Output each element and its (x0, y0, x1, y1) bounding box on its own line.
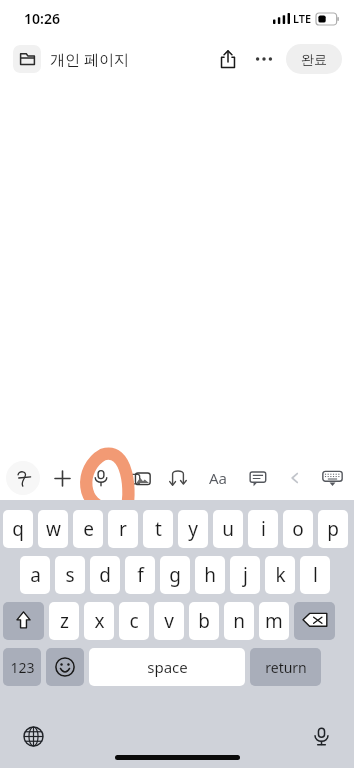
button[interactable]: Insert (46, 462, 78, 494)
button[interactable]: b (189, 602, 219, 640)
button[interactable]: d (90, 556, 120, 594)
button[interactable]: Scan document (162, 462, 194, 494)
button[interactable]: Aa (201, 461, 235, 495)
staticText: r (119, 516, 127, 542)
button[interactable]: i (248, 510, 278, 548)
staticText: 10:26 (24, 9, 60, 28)
staticText: e (83, 516, 94, 542)
staticText: a (30, 562, 41, 588)
staticText: g (169, 562, 181, 588)
button[interactable]: Handwriting (6, 461, 40, 495)
button[interactable]: Shift (3, 602, 44, 640)
button[interactable]: n (224, 602, 254, 640)
button[interactable]: t (143, 510, 173, 548)
staticText: m (265, 608, 283, 634)
staticText: f (137, 562, 144, 588)
staticText: w (46, 516, 61, 542)
button[interactable]: l (300, 556, 330, 594)
button[interactable]: f (125, 556, 155, 594)
button[interactable]: p (318, 510, 348, 548)
button[interactable]: y (178, 510, 208, 548)
staticText: k (275, 562, 286, 588)
button[interactable]: Photos (124, 462, 156, 494)
button[interactable]: o (283, 510, 313, 548)
button[interactable]: q (3, 510, 33, 548)
button[interactable]: z (49, 602, 79, 640)
button[interactable]: Share (211, 42, 245, 76)
staticText: space (147, 657, 188, 677)
button[interactable]: s (55, 556, 85, 594)
staticText: z (60, 608, 69, 634)
staticText: j (243, 562, 248, 588)
button[interactable]: m (259, 602, 289, 640)
staticText: Aa (209, 468, 228, 488)
staticText: q (12, 516, 24, 542)
button[interactable]: Back (281, 464, 309, 492)
button[interactable]: v (154, 602, 184, 640)
staticText: c (129, 608, 139, 634)
staticText: l (313, 562, 318, 588)
button[interactable]: Dictation (305, 720, 337, 752)
staticText: LTE (293, 11, 312, 26)
staticText: s (65, 562, 75, 588)
staticText: t (155, 516, 162, 542)
button[interactable]: 123 (3, 648, 41, 686)
staticText: v (164, 608, 174, 634)
button[interactable]: g (160, 556, 190, 594)
button[interactable]: a (20, 556, 50, 594)
button[interactable]: Backspace (294, 602, 335, 640)
button[interactable]: u (213, 510, 243, 548)
button[interactable]: More options (247, 42, 281, 76)
staticText: h (204, 562, 216, 588)
button[interactable]: Dictate (84, 461, 118, 495)
button[interactable]: Hide keyboard (316, 462, 348, 494)
button[interactable]: Emoji (46, 648, 84, 686)
button[interactable]: h (195, 556, 225, 594)
staticText: i (261, 516, 266, 542)
button[interactable]: c (119, 602, 149, 640)
staticText: 개인 페이지 (50, 49, 129, 69)
button[interactable]: j (230, 556, 260, 594)
staticText: p (327, 516, 339, 542)
button[interactable]: w (38, 510, 68, 548)
button[interactable]: 개인 페이지 (13, 45, 129, 73)
staticText: d (99, 562, 111, 588)
button[interactable]: space (89, 648, 245, 686)
button[interactable]: 완료 (286, 44, 342, 74)
button[interactable]: Change keyboard language (17, 720, 49, 752)
staticText: 완료 (301, 51, 327, 67)
button[interactable]: return (250, 648, 321, 686)
staticText: 123 (10, 658, 35, 677)
button[interactable]: r (108, 510, 138, 548)
staticText: return (265, 658, 307, 677)
staticText: x (94, 608, 105, 634)
button[interactable]: x (84, 602, 114, 640)
staticText: n (233, 608, 245, 634)
staticText: y (188, 516, 198, 542)
staticText: u (222, 516, 234, 542)
button[interactable]: Comment (242, 462, 274, 494)
staticText: o (292, 516, 304, 542)
button[interactable]: k (265, 556, 295, 594)
staticText: b (198, 608, 210, 634)
button[interactable]: e (73, 510, 103, 548)
